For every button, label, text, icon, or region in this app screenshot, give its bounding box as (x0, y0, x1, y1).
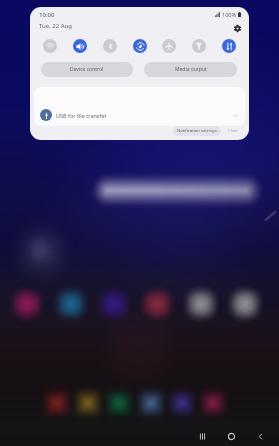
button[interactable]: Flashlight (189, 36, 209, 56)
button[interactable]: Device control (41, 62, 133, 77)
staticText: 100% (222, 11, 237, 18)
button[interactable]: Wi-Fi (40, 36, 60, 56)
staticText: USB for file transfer (56, 112, 107, 119)
button[interactable]: Recents (192, 426, 212, 446)
staticText: Media output (175, 66, 207, 73)
staticText: Clear (228, 128, 239, 134)
button[interactable]: Notification settings (173, 126, 221, 136)
button[interactable]: Bluetooth (100, 36, 120, 56)
button[interactable]: USB for file transfer (34, 87, 245, 126)
button[interactable]: Home (221, 426, 241, 446)
staticText: Notification settings (177, 128, 217, 134)
staticText: Device control (70, 66, 104, 73)
button[interactable]: Mobile data (219, 36, 239, 56)
staticText: Tue, 22 Aug (39, 22, 72, 30)
button[interactable]: Media output (144, 62, 237, 77)
button[interactable]: Sound (70, 36, 90, 56)
button[interactable]: Clear (226, 128, 241, 134)
staticText: 10:00 (39, 11, 55, 19)
button[interactable]: Back (250, 426, 270, 446)
button[interactable]: Airplane mode (159, 36, 179, 56)
button[interactable]: Auto rotate (130, 36, 150, 56)
button[interactable]: Settings (232, 23, 242, 33)
